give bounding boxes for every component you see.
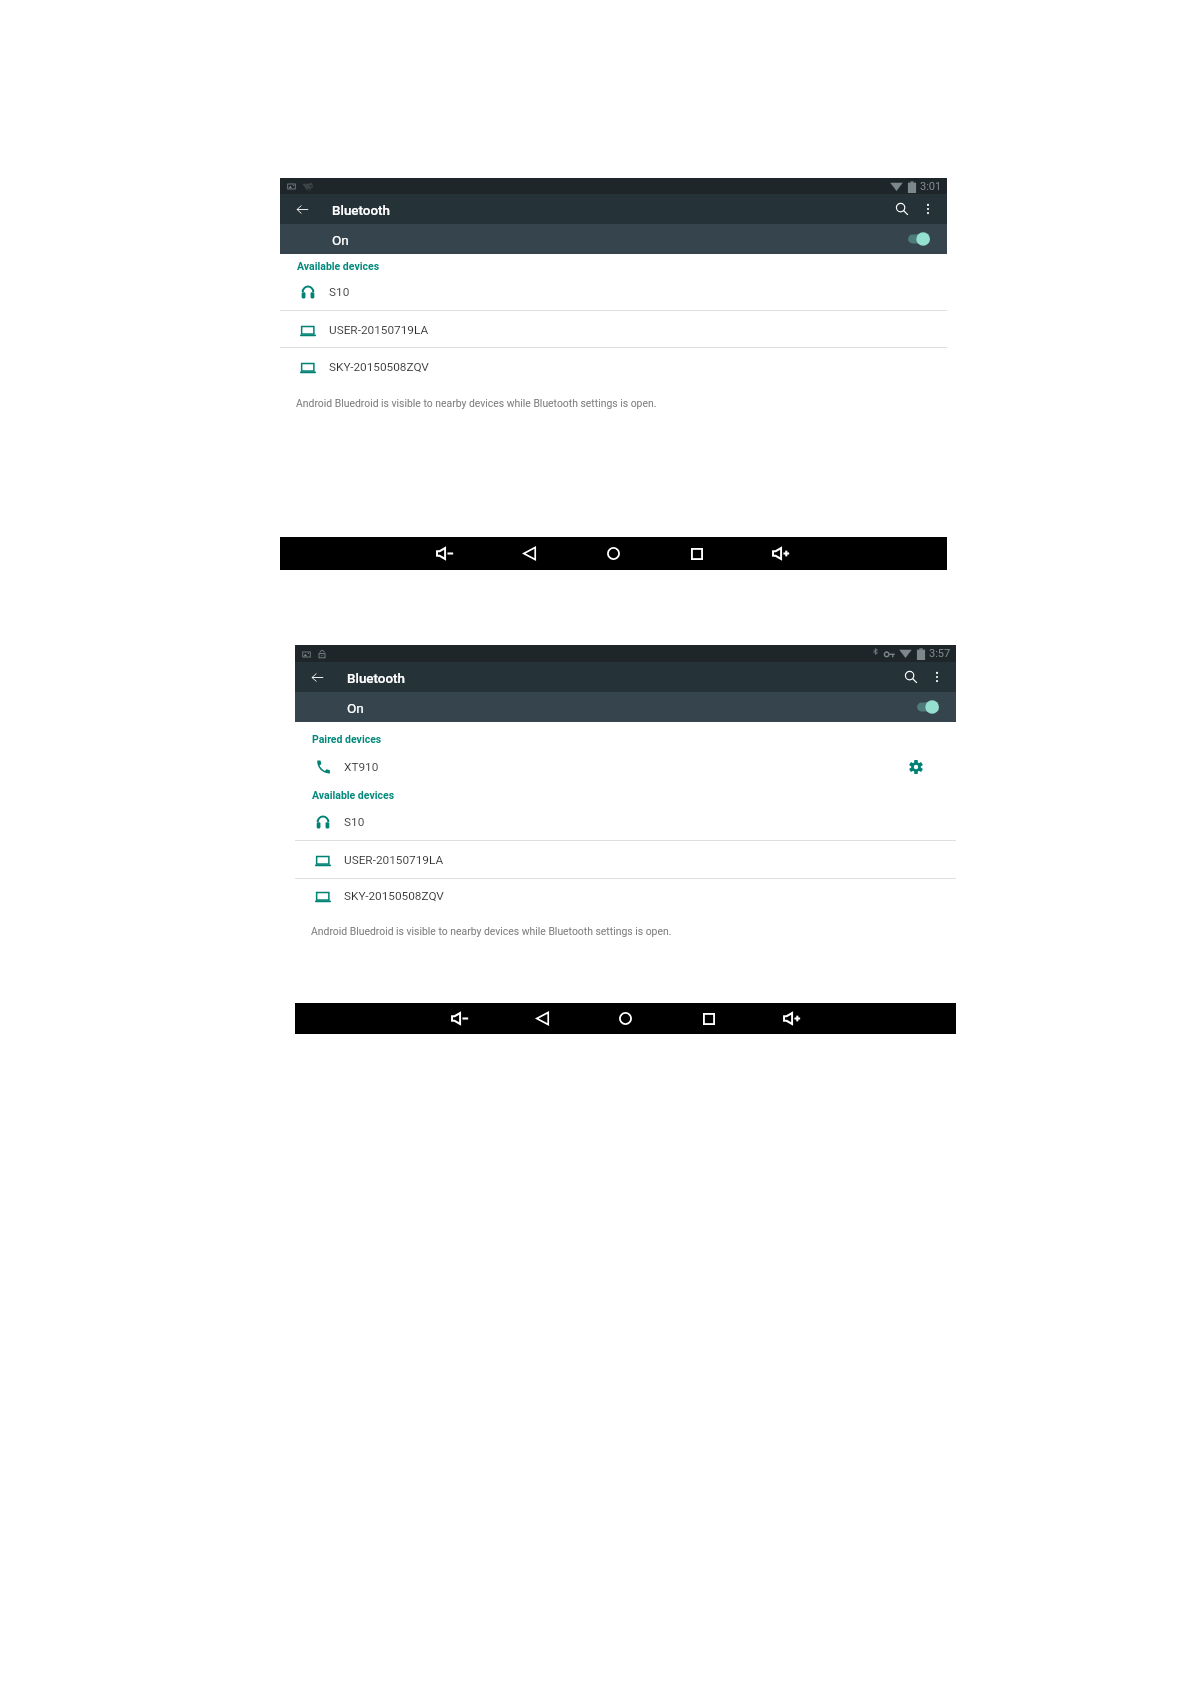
button[interactable]: XT910: [295, 756, 956, 778]
button[interactable]: Home: [571, 537, 655, 570]
staticText: Paired devices: [312, 733, 382, 745]
staticText: Bluetooth: [332, 203, 390, 219]
button[interactable]: Volume down: [403, 537, 487, 570]
staticText: S10: [329, 285, 350, 299]
button[interactable]: S10: [280, 281, 947, 303]
button[interactable]: Back: [501, 1003, 584, 1034]
staticText: XT910: [344, 760, 379, 774]
staticText: 3:57: [929, 647, 951, 660]
button[interactable]: Home: [584, 1003, 667, 1034]
button[interactable]: Navigate up: [304, 664, 330, 690]
button[interactable]: Navigate up: [289, 196, 315, 222]
staticText: USER-20150719LA: [329, 323, 429, 337]
button[interactable]: Search: [898, 664, 924, 690]
button[interactable]: On: [295, 692, 956, 722]
staticText: Bluetooth: [347, 671, 405, 687]
button[interactable]: Search: [889, 196, 915, 222]
button[interactable]: Back: [487, 537, 571, 570]
staticText: S10: [344, 815, 365, 829]
button[interactable]: Volume down: [418, 1003, 501, 1034]
button[interactable]: Volume up: [750, 1003, 833, 1034]
button[interactable]: SKY-20150508ZQV: [295, 885, 956, 907]
staticText: Android Bluedroid is visible to nearby d…: [311, 925, 672, 937]
button[interactable]: More options: [915, 196, 941, 222]
button[interactable]: S10: [295, 811, 956, 833]
button[interactable]: Device settings: [905, 756, 927, 778]
button[interactable]: Volume up: [739, 537, 823, 570]
staticText: Available devices: [312, 789, 395, 801]
button[interactable]: USER-20150719LA: [280, 319, 947, 341]
button[interactable]: More options: [924, 664, 950, 690]
staticText: On: [347, 700, 364, 716]
button[interactable]: Recents: [667, 1003, 750, 1034]
button[interactable]: Recents: [655, 537, 739, 570]
staticText: On: [332, 232, 349, 248]
staticText: Available devices: [297, 260, 380, 272]
staticText: USER-20150719LA: [344, 853, 444, 867]
button[interactable]: Bluetooth toggle: [908, 232, 930, 246]
button[interactable]: Bluetooth toggle: [917, 700, 939, 714]
staticText: Android Bluedroid is visible to nearby d…: [296, 397, 657, 409]
button[interactable]: SKY-20150508ZQV: [280, 356, 947, 378]
staticText: 3:01: [920, 180, 942, 193]
button[interactable]: USER-20150719LA: [295, 849, 956, 871]
button[interactable]: On: [280, 224, 947, 254]
staticText: SKY-20150508ZQV: [329, 360, 429, 374]
staticText: SKY-20150508ZQV: [344, 889, 444, 903]
